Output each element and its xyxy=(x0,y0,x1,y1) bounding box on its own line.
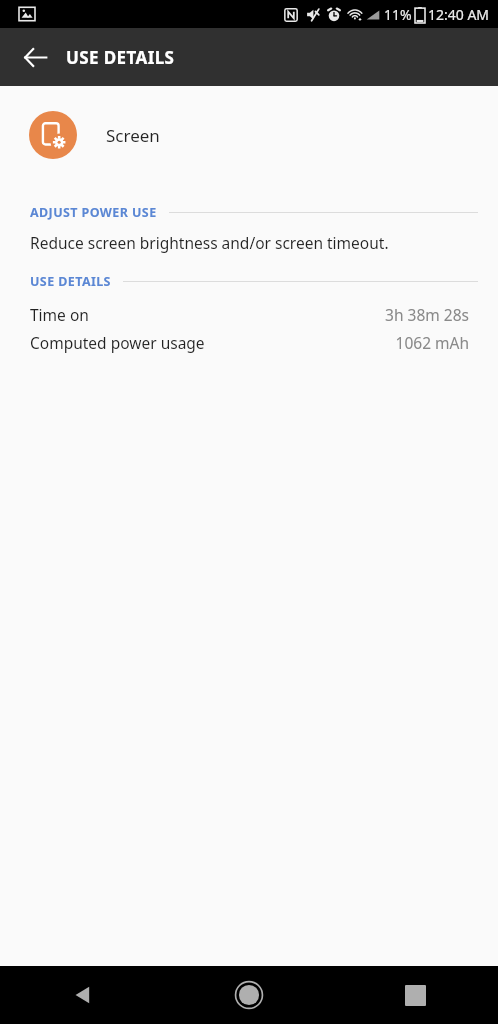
button[interactable]: Back xyxy=(0,966,166,1024)
staticText: 1062 mAh xyxy=(395,332,469,353)
staticText: Computed power usage xyxy=(30,332,205,353)
staticText: Screen xyxy=(106,124,160,147)
button[interactable]: Recent apps xyxy=(332,966,498,1024)
staticText: Time on xyxy=(30,304,89,325)
staticText: USE DETAILS xyxy=(66,46,175,69)
staticText: USE DETAILS xyxy=(30,273,111,290)
button[interactable]: Computed power usage xyxy=(0,330,498,355)
button[interactable]: Time on xyxy=(0,302,498,327)
staticText: 11% xyxy=(384,5,412,24)
staticText: ADJUST POWER USE xyxy=(30,204,157,221)
button[interactable]: Back xyxy=(13,35,57,79)
staticText: 3h 38m 28s xyxy=(385,304,469,325)
staticText: 12:40 AM xyxy=(428,5,490,24)
staticText: Reduce screen brightness and/or screen t… xyxy=(30,232,389,253)
button[interactable]: Home xyxy=(166,966,332,1024)
button[interactable]: Screen xyxy=(0,100,498,170)
